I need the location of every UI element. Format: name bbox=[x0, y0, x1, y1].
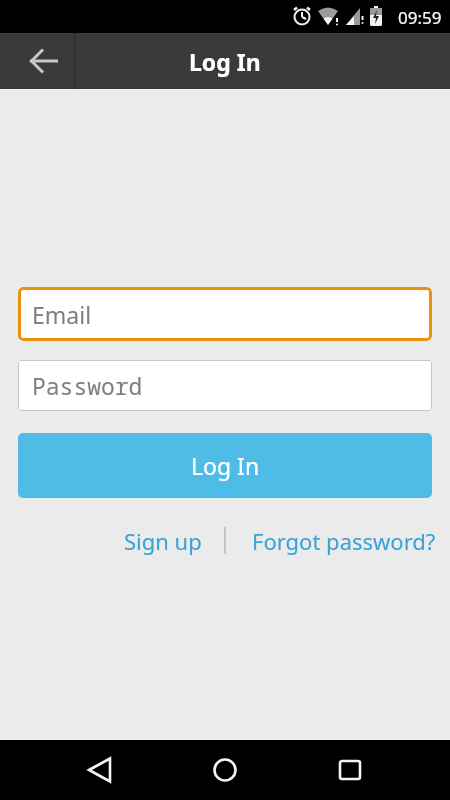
staticText: Sign up bbox=[124, 526, 202, 556]
button[interactable]: Forgot password? bbox=[252, 524, 430, 558]
button[interactable]: Email bbox=[18, 287, 432, 341]
staticText: Log In bbox=[189, 46, 261, 77]
button[interactable] bbox=[310, 740, 390, 800]
button[interactable] bbox=[0, 33, 74, 89]
staticText: Password bbox=[32, 370, 143, 401]
button[interactable] bbox=[60, 740, 140, 800]
staticText: 09:59 bbox=[398, 6, 442, 29]
button[interactable]: Log In bbox=[18, 433, 432, 498]
staticText: Forgot password? bbox=[252, 526, 430, 556]
button[interactable]: Password bbox=[18, 360, 432, 411]
staticText: Email bbox=[32, 299, 92, 330]
staticText: Log In bbox=[191, 450, 260, 481]
button[interactable]: Sign up bbox=[90, 524, 236, 558]
button[interactable] bbox=[185, 740, 265, 800]
